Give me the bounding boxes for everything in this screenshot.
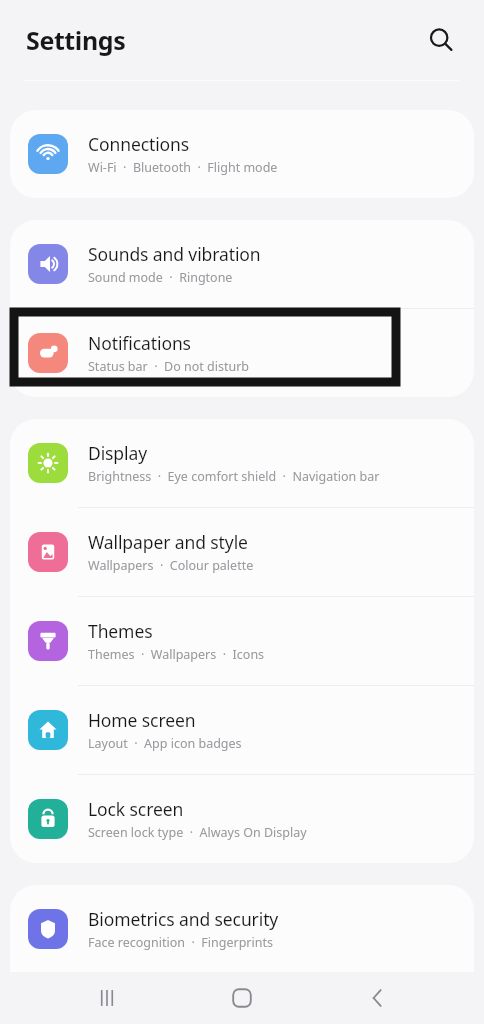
staticText: Connections <box>88 132 190 156</box>
button[interactable]: Privacy <box>10 974 474 1024</box>
button[interactable]: Recents <box>78 972 136 1024</box>
staticText: Permission usage · Permission manager <box>88 1004 331 1021</box>
button[interactable]: Home <box>213 972 271 1024</box>
button[interactable]: Home screen <box>10 686 474 774</box>
staticText: Settings <box>26 23 126 57</box>
button[interactable]: Sounds and vibration <box>10 220 474 308</box>
staticText: Home screen <box>88 708 196 732</box>
staticText: Lock screen <box>88 797 184 821</box>
button[interactable]: Connections <box>10 110 474 198</box>
staticText: Sounds and vibration <box>88 242 261 266</box>
staticText: Sound mode · Ringtone <box>88 269 233 286</box>
staticText: Screen lock type · Always On Display <box>88 824 307 841</box>
button[interactable]: Display <box>10 419 474 507</box>
staticText: Notifications <box>88 331 191 355</box>
staticText: Face recognition · Fingerprints <box>88 934 273 951</box>
staticText: Themes · Wallpapers · Icons <box>88 646 265 663</box>
button[interactable]: Notifications <box>10 309 474 397</box>
button[interactable]: Themes <box>10 597 474 685</box>
button[interactable]: Biometrics and security <box>10 885 474 973</box>
staticText: Wallpapers · Colour palette <box>88 557 254 574</box>
button[interactable]: Lock screen <box>10 775 474 863</box>
staticText: Status bar · Do not disturb <box>88 358 250 375</box>
staticText: Display <box>88 441 147 465</box>
staticText: Wi-Fi · Bluetooth · Flight mode <box>88 159 278 176</box>
staticText: Brightness · Eye comfort shield · Naviga… <box>88 468 380 485</box>
staticText: Biometrics and security <box>88 907 279 931</box>
staticText: Wallpaper and style <box>88 530 248 554</box>
button[interactable]: Back <box>349 972 407 1024</box>
staticText: Layout · App icon badges <box>88 735 242 752</box>
staticText: Privacy <box>88 977 146 1001</box>
button[interactable]: Search <box>418 17 464 63</box>
button[interactable]: Wallpaper and style <box>10 508 474 596</box>
staticText: Themes <box>88 619 153 643</box>
